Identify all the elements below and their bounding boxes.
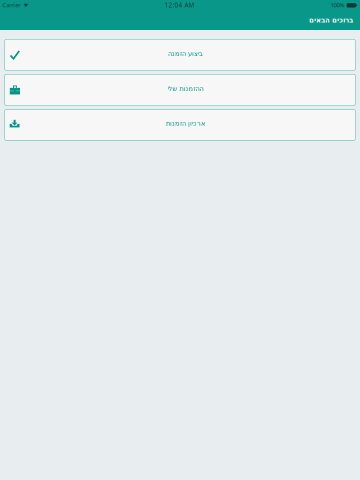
button[interactable]: ביצוע הזמנה — [4, 39, 355, 71]
staticText: ארכיון הזמנות — [165, 120, 204, 127]
staticText: ברוכים הבאים — [308, 16, 352, 24]
staticText: ביצוע הזמנה — [167, 50, 202, 58]
button[interactable]: ארכיון הזמנות — [4, 109, 355, 140]
staticText: 100% — [331, 1, 345, 9]
staticText: 12:04 AM — [164, 1, 194, 9]
button[interactable]: ההזמנות שלי — [4, 74, 355, 106]
staticText: ההזמנות שלי — [167, 85, 203, 93]
staticText: Carrier — [2, 1, 20, 9]
